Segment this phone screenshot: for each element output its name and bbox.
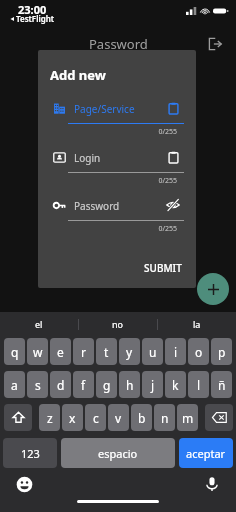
button[interactable]: Shift	[4, 404, 32, 431]
staticText: m	[182, 410, 194, 426]
button[interactable]: c	[85, 404, 106, 431]
button[interactable]: el	[0, 312, 78, 336]
button[interactable]: Password	[74, 193, 182, 219]
button[interactable]: h	[119, 371, 140, 398]
button[interactable]: Backspace	[205, 404, 233, 431]
button[interactable]: i	[165, 338, 186, 365]
staticText: 123	[21, 446, 40, 461]
staticText: l	[197, 377, 201, 393]
button[interactable]: x	[62, 404, 83, 431]
button[interactable]: d	[50, 371, 71, 398]
staticText: Password	[74, 199, 120, 213]
staticText: h	[126, 377, 134, 393]
button[interactable]: Show password	[164, 196, 182, 214]
staticText: 0/255	[158, 224, 177, 234]
button[interactable]: j	[142, 371, 163, 398]
staticText: g	[103, 377, 111, 393]
staticText: z	[47, 410, 53, 426]
staticText: r	[81, 344, 86, 360]
staticText: j	[151, 377, 155, 393]
button[interactable]: t	[96, 338, 117, 365]
button[interactable]: n	[154, 404, 175, 431]
staticText: 23:00	[18, 2, 47, 17]
staticText: n	[161, 410, 169, 426]
staticText: Add new	[50, 66, 106, 84]
button[interactable]: la	[158, 312, 236, 336]
staticText: f	[81, 377, 86, 393]
button[interactable]: g	[96, 371, 117, 398]
button[interactable]: y	[119, 338, 140, 365]
button[interactable]: Paste login	[164, 148, 182, 166]
staticText: TestFlight	[16, 13, 55, 24]
button[interactable]: b	[131, 404, 152, 431]
button[interactable]: ñ	[211, 371, 232, 398]
staticText: a	[11, 377, 18, 393]
staticText: espacio	[98, 446, 138, 461]
staticText: SUBMIT	[144, 261, 182, 275]
button[interactable]: espacio	[61, 438, 175, 468]
staticText: aceptar	[186, 446, 226, 461]
staticText: w	[33, 344, 43, 360]
button[interactable]: k	[165, 371, 186, 398]
button[interactable]: f	[73, 371, 94, 398]
button[interactable]: 123	[3, 438, 57, 468]
staticText: c	[93, 410, 99, 426]
button[interactable]: Emoji	[14, 474, 34, 494]
button[interactable]: aceptar	[179, 438, 233, 468]
button[interactable]: no	[79, 312, 157, 336]
button[interactable]: Add	[197, 273, 229, 305]
staticText: k	[172, 377, 179, 393]
staticText: Password	[89, 35, 148, 53]
button[interactable]: v	[108, 404, 129, 431]
staticText: d	[57, 377, 65, 393]
staticText: no	[112, 318, 124, 330]
button[interactable]: Paste page or service	[164, 99, 182, 117]
button[interactable]: u	[142, 338, 163, 365]
staticText: 0/255	[158, 176, 177, 186]
staticText: y	[126, 344, 133, 360]
staticText: b	[138, 410, 146, 426]
staticText: t	[104, 344, 109, 360]
button[interactable]: w	[27, 338, 48, 365]
staticText: ñ	[218, 377, 226, 393]
staticText: q	[11, 344, 19, 360]
button[interactable]: Voice input	[202, 474, 222, 494]
staticText: la	[193, 318, 201, 330]
button[interactable]: Page/Service	[74, 96, 182, 122]
staticText: i	[174, 344, 178, 360]
button[interactable]: o	[188, 338, 209, 365]
button[interactable]: Log out	[204, 33, 226, 55]
button[interactable]: q	[4, 338, 25, 365]
staticText: u	[149, 344, 157, 360]
button[interactable]: z	[39, 404, 60, 431]
staticText: o	[195, 344, 203, 360]
button[interactable]: e	[50, 338, 71, 365]
staticText: x	[69, 410, 76, 426]
staticText: e	[57, 344, 64, 360]
staticText: s	[35, 377, 41, 393]
button[interactable]: m	[177, 404, 198, 431]
button[interactable]: s	[27, 371, 48, 398]
button[interactable]: l	[188, 371, 209, 398]
staticText: v	[115, 410, 122, 426]
button[interactable]: Login	[74, 145, 182, 171]
button[interactable]: r	[73, 338, 94, 365]
staticText: 0/255	[158, 127, 177, 137]
staticText: p	[218, 344, 226, 360]
button[interactable]: SUBMIT	[136, 256, 190, 280]
button[interactable]: a	[4, 371, 25, 398]
staticText: Page/Service	[74, 102, 135, 116]
staticText: el	[35, 318, 43, 330]
button[interactable]: p	[211, 338, 232, 365]
staticText: Login	[74, 151, 101, 165]
